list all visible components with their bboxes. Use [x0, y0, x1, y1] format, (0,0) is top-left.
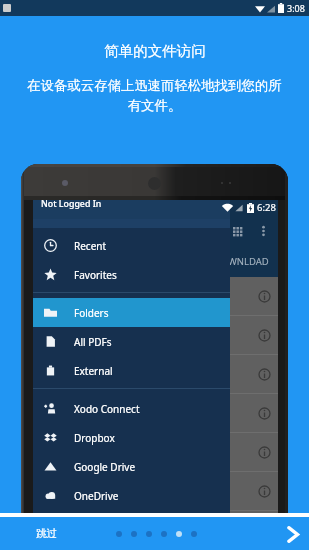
staticText: Favorites — [74, 268, 117, 282]
button[interactable]: Recent — [33, 231, 230, 260]
staticText: Folders — [74, 306, 109, 320]
button[interactable]: OneDrive — [33, 481, 230, 510]
staticText: Google Drive — [74, 460, 136, 474]
staticText: External — [74, 364, 113, 378]
staticText: 简单的文件访问 — [104, 42, 206, 60]
staticText: Xodo Connect — [74, 402, 140, 416]
staticText: Not Logged In — [41, 198, 102, 210]
staticText: 跳过 — [36, 527, 57, 540]
button[interactable]: Next — [279, 520, 307, 548]
staticText: Recent — [74, 239, 107, 253]
staticText: OneDrive — [74, 489, 119, 503]
staticText: 在设备或云存储上迅速而轻松地找到您的所有文件。 — [26, 77, 283, 114]
staticText: WNLDAD — [228, 255, 269, 268]
button[interactable]: Folders — [33, 298, 230, 327]
button[interactable]: All PDFs — [33, 327, 230, 356]
button[interactable]: Dropbox — [33, 423, 230, 452]
button[interactable]: 跳过 — [36, 527, 57, 540]
button[interactable]: Favorites — [33, 260, 230, 289]
button[interactable]: External — [33, 356, 230, 385]
button[interactable]: Google Drive — [33, 452, 230, 481]
staticText: Dropbox — [74, 431, 115, 445]
button[interactable]: Xodo Connect — [33, 394, 230, 423]
staticText: All PDFs — [74, 335, 112, 349]
staticText: 3:08 — [287, 2, 305, 14]
staticText: 6:28 — [257, 201, 276, 214]
